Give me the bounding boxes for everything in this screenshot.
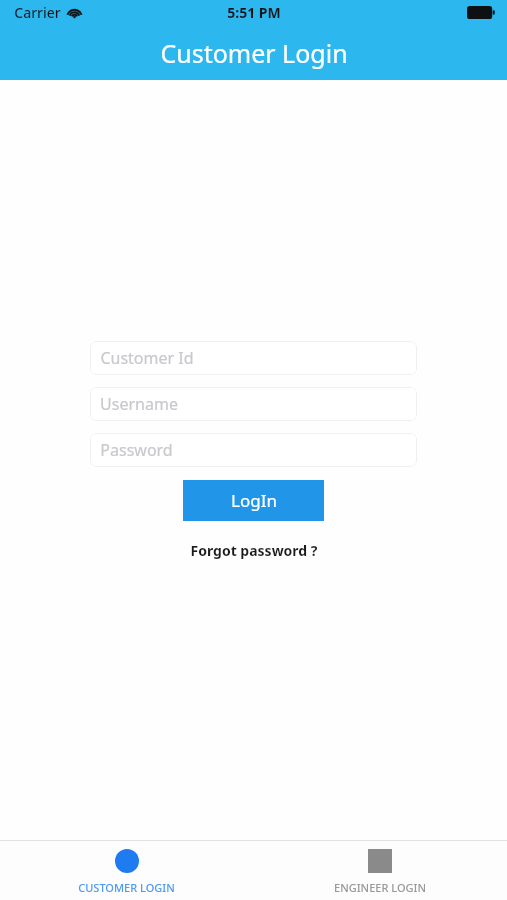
staticText: LogIn bbox=[231, 489, 277, 512]
staticText: 5:51 PM bbox=[227, 3, 281, 22]
button[interactable]: Forgot password ? bbox=[186, 537, 322, 564]
staticText: Carrier bbox=[14, 3, 61, 22]
button[interactable]: Username bbox=[90, 387, 417, 421]
staticText: Password bbox=[100, 439, 173, 461]
staticText: Customer Login bbox=[160, 36, 348, 70]
button[interactable]: Password bbox=[90, 433, 417, 467]
staticText: Customer Id bbox=[100, 347, 194, 369]
button[interactable]: LogIn bbox=[183, 480, 324, 521]
staticText: Forgot password ? bbox=[190, 541, 318, 560]
staticText: CUSTOMER LOGIN bbox=[78, 880, 175, 895]
staticText: Username bbox=[100, 393, 178, 415]
button[interactable]: ENGINEER LOGIN bbox=[253, 840, 507, 900]
button[interactable]: Customer Id bbox=[90, 341, 417, 375]
staticText: ENGINEER LOGIN bbox=[334, 880, 426, 895]
button[interactable]: CUSTOMER LOGIN bbox=[0, 840, 253, 900]
